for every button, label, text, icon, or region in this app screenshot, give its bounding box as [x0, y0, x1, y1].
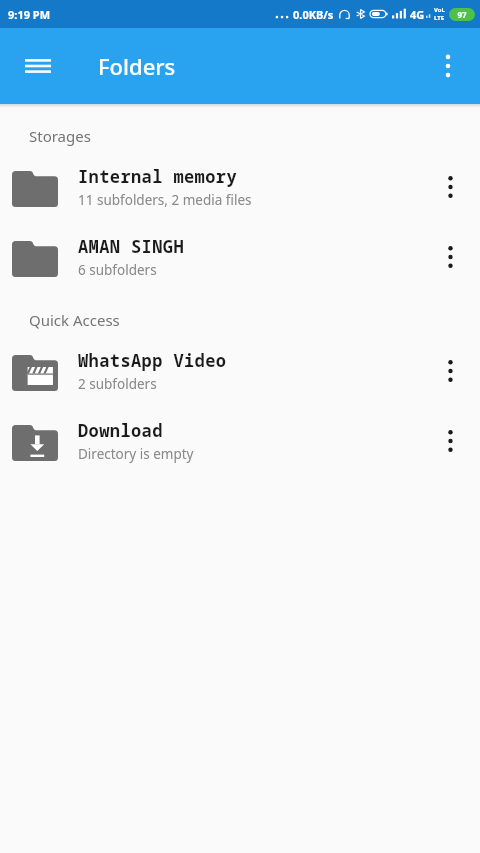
- staticText: Directory is empty: [78, 445, 194, 463]
- button[interactable]: AMAN SINGH: [0, 222, 480, 292]
- staticText: 0.0KB/s: [293, 7, 334, 22]
- staticText: 4G: [410, 7, 425, 22]
- button[interactable]: Internal memory: [0, 152, 480, 222]
- staticText: Folders: [98, 51, 176, 81]
- staticText: 2 subfolders: [78, 375, 157, 393]
- button[interactable]: More options: [422, 40, 474, 92]
- staticText: 9:19 PM: [8, 7, 51, 22]
- staticText: WhatsApp Video: [78, 349, 227, 372]
- button[interactable]: WhatsApp Video: [0, 336, 480, 406]
- button[interactable]: More options for Internal memory: [424, 152, 476, 222]
- staticText: 6 subfolders: [78, 261, 157, 279]
- staticText: LTE: [434, 14, 445, 22]
- staticText: Quick Access: [29, 310, 120, 330]
- button[interactable]: More options for AMAN SINGH: [424, 222, 476, 292]
- staticText: 11 subfolders, 2 media files: [78, 191, 252, 209]
- staticText: Storages: [29, 126, 91, 146]
- button[interactable]: Open navigation drawer: [10, 38, 66, 94]
- button[interactable]: Download: [0, 406, 480, 476]
- staticText: Download: [78, 419, 163, 442]
- staticText: AMAN SINGH: [78, 235, 184, 258]
- staticText: Internal memory: [78, 165, 237, 188]
- staticText: VoL: [434, 6, 445, 14]
- button[interactable]: More options for Download: [424, 406, 476, 476]
- button[interactable]: More options for WhatsApp Video: [424, 336, 476, 406]
- staticText: 97: [457, 9, 467, 20]
